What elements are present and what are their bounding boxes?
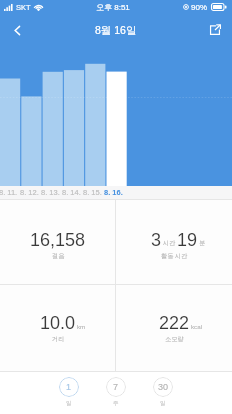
staticText: 8. 13. — [41, 188, 60, 196]
button[interactable]: Share — [198, 14, 232, 46]
staticText: 일 — [66, 400, 72, 407]
staticText: 걸음 — [52, 252, 65, 260]
button[interactable]: 8. 15. — [82, 185, 103, 198]
button[interactable]: 8. 13. — [40, 185, 61, 198]
staticText: 3 — [151, 230, 162, 250]
staticText: 222 — [159, 313, 190, 333]
staticText: 8. 12. — [20, 188, 39, 196]
staticText: 7 — [113, 382, 119, 392]
button[interactable]: Back — [0, 14, 34, 46]
button[interactable]: 8. 12. — [19, 185, 40, 198]
staticText: 10.0 — [40, 313, 76, 333]
staticText: 90% — [191, 3, 208, 12]
button[interactable]: km — [0, 285, 115, 371]
staticText: 8월 16일 — [95, 24, 137, 37]
staticText: 30 — [158, 382, 169, 392]
staticText: 거리 — [52, 335, 65, 343]
button[interactable]: 8. 11. — [0, 185, 19, 198]
button[interactable]: 7 — [106, 377, 126, 407]
staticText: 16,158 — [30, 230, 86, 250]
staticText: 오후 8:51 — [96, 2, 130, 12]
staticText: 8. 11. — [0, 188, 18, 196]
staticText: 활동 시간 — [161, 252, 188, 260]
staticText: 소모량 — [165, 335, 184, 343]
button[interactable]: 1 — [59, 377, 79, 407]
button[interactable]: 16,158 — [0, 200, 115, 284]
staticText: 일 — [160, 400, 166, 407]
staticText: km — [77, 323, 86, 330]
staticText: 8. 14. — [62, 188, 81, 196]
button[interactable]: 8. 14. — [61, 185, 82, 198]
button[interactable]: 분 — [116, 200, 232, 284]
staticText: 8. 16. — [104, 188, 123, 196]
staticText: kcal — [191, 323, 203, 330]
staticText: 19 — [177, 230, 198, 250]
button[interactable]: 8. 16. — [103, 185, 124, 198]
staticText: 시간 — [163, 239, 176, 247]
staticText: SKT — [16, 3, 31, 11]
staticText: 1 — [66, 382, 72, 392]
button[interactable]: 30 — [153, 377, 173, 407]
staticText: 8. 15. — [83, 188, 102, 196]
button[interactable]: kcal — [116, 285, 232, 371]
staticText: 분 — [199, 239, 206, 247]
staticText: 주 — [113, 400, 119, 407]
